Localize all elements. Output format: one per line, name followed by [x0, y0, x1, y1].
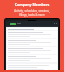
button[interactable]: [7, 55, 57, 62]
button[interactable]: Menu: [4, 18, 60, 72]
button[interactable]: [7, 64, 57, 71]
button[interactable]: [7, 28, 57, 30]
button[interactable]: [7, 39, 57, 46]
button[interactable]: [7, 31, 57, 38]
staticText: Company Members: [2, 2, 62, 7]
staticText: Activity, schedules, sessions, filings, …: [2, 9, 62, 16]
button[interactable]: [10, 23, 16, 25]
button[interactable]: Menu: [6, 21, 58, 26]
button[interactable]: [7, 47, 57, 54]
